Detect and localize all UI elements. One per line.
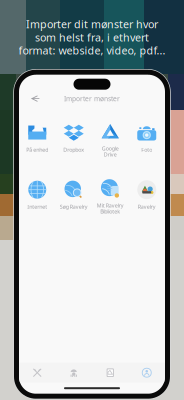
staticText: Importer mønster xyxy=(64,94,120,103)
staticText: som helst fra, i ethvert xyxy=(35,30,149,44)
staticText: Drive xyxy=(104,151,117,158)
staticText: Ravelry xyxy=(138,203,156,210)
button[interactable]: Søg Ravelry xyxy=(55,180,92,214)
staticText: Dropbox xyxy=(63,146,84,153)
staticText: Søg Ravelry xyxy=(60,203,88,210)
button[interactable]: Back xyxy=(27,91,44,106)
staticText: Foto xyxy=(141,146,152,153)
button[interactable]: Mit Ravelry xyxy=(92,180,128,214)
staticText: På enhed xyxy=(26,146,48,153)
button[interactable]: Profile xyxy=(128,365,165,381)
button[interactable]: Patterns xyxy=(92,365,128,381)
button[interactable]: Yarn xyxy=(55,365,92,381)
button[interactable]: Ravelry xyxy=(128,180,165,214)
button[interactable]: Foto xyxy=(128,123,165,157)
staticText: Importer dit mønster hvor xyxy=(26,17,158,31)
staticText: Internet xyxy=(27,203,47,210)
staticText: Mit Ravelry xyxy=(97,202,124,209)
button[interactable]: Internet xyxy=(19,180,55,214)
button[interactable]: Dropbox xyxy=(55,123,92,157)
button[interactable]: På enhed xyxy=(19,123,55,157)
staticText: Bibliotek xyxy=(100,208,120,215)
button[interactable]: Tools xyxy=(19,365,55,381)
staticText: format: webside, video, pdf... xyxy=(18,43,165,57)
staticText: Google xyxy=(102,145,119,152)
button[interactable]: Google xyxy=(92,123,128,157)
